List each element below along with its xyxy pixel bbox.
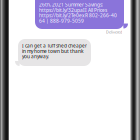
staticText: https://bit.ly/32upaII All Prices [39, 7, 107, 13]
staticText: you anyway. [22, 54, 49, 59]
staticText: I can get a Tuff shed cheaper [22, 43, 87, 48]
staticText: 64 | 888-979-5059 [39, 18, 84, 23]
staticText: in my home town but thank [22, 48, 84, 54]
staticText: 26th, 2021 Summer Savings: [39, 2, 103, 7]
button[interactable]: I can get a Tuff shed cheaper [18, 39, 91, 66]
button[interactable]: 26th, 2021 Summer Savings: [35, 0, 124, 29]
staticText: https://bit.ly/2Te0exR 802-266-40 [39, 13, 117, 18]
staticText: Delivered [106, 29, 122, 35]
